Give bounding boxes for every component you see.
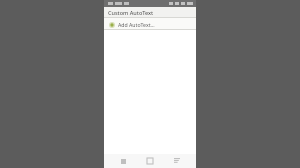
staticText: Add AutoText...: [118, 21, 155, 28]
button[interactable]: Back: [116, 154, 130, 168]
staticText: Custom AutoText: [108, 9, 154, 16]
button[interactable]: Add AutoText...: [104, 18, 196, 30]
button[interactable]: Recent apps: [170, 154, 184, 168]
button[interactable]: Home: [143, 154, 157, 168]
